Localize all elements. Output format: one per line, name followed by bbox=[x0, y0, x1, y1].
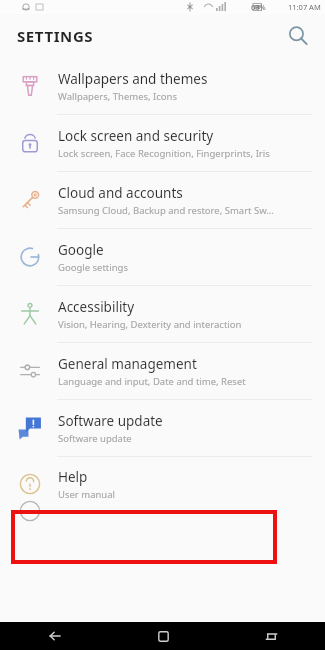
button[interactable]: Wallpapers and themes bbox=[0, 58, 325, 114]
staticText: Lock screen and security bbox=[58, 127, 214, 145]
button[interactable]: Google bbox=[0, 229, 325, 285]
button[interactable]: Recents bbox=[217, 622, 325, 650]
button[interactable]: Search bbox=[283, 21, 313, 51]
staticText: Help bbox=[58, 468, 88, 486]
staticText: 11:07 AM bbox=[288, 2, 321, 12]
staticText: User manual bbox=[58, 488, 115, 501]
button[interactable]: Software update bbox=[0, 400, 325, 456]
staticText: Software update bbox=[58, 412, 163, 430]
button[interactable]: Cloud and accounts bbox=[0, 172, 325, 228]
staticText: 63% bbox=[251, 2, 266, 12]
button[interactable]: Accessibility bbox=[0, 286, 325, 342]
staticText: General management bbox=[58, 355, 197, 373]
button[interactable]: Back bbox=[0, 622, 109, 650]
staticText: Vision, Hearing, Dexterity and interacti… bbox=[58, 318, 242, 331]
button[interactable]: Lock screen and security bbox=[0, 115, 325, 171]
staticText: Software update bbox=[58, 432, 132, 445]
staticText: Cloud and accounts bbox=[58, 184, 183, 202]
staticText: Wallpapers and themes bbox=[58, 70, 208, 88]
button[interactable]: Help bbox=[0, 457, 325, 511]
staticText: Google settings bbox=[58, 261, 129, 274]
staticText: Samsung Cloud, Backup and restore, Smart… bbox=[58, 204, 274, 217]
staticText: SETTINGS bbox=[17, 26, 94, 46]
staticText: Lock screen, Face Recognition, Fingerpri… bbox=[58, 147, 270, 160]
button[interactable]: Home bbox=[109, 622, 217, 650]
button[interactable]: General management bbox=[0, 343, 325, 399]
staticText: Language and input, Date and time, Reset bbox=[58, 375, 246, 388]
staticText: Google bbox=[58, 241, 104, 259]
staticText: Accessibility bbox=[58, 298, 135, 316]
staticText: Wallpapers, Themes, Icons bbox=[58, 90, 178, 103]
